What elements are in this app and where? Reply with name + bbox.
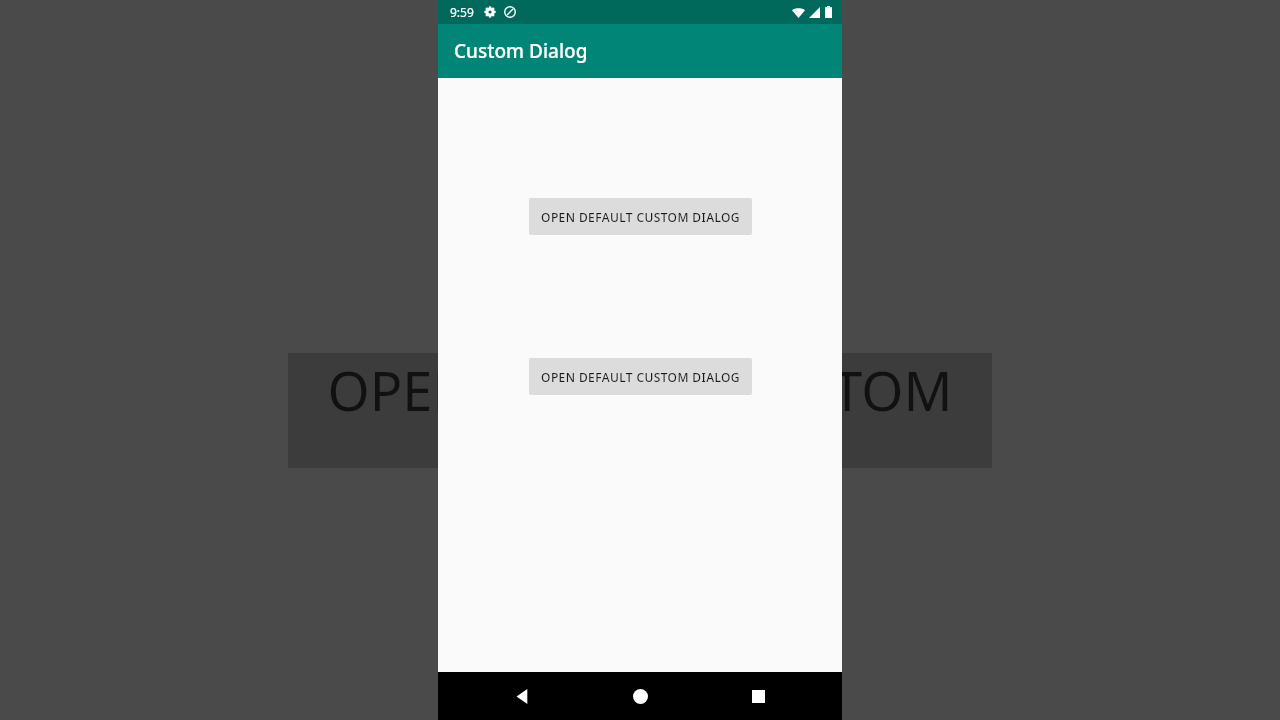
staticText: Custom Dialog (454, 38, 588, 64)
staticText: OPEN DEFAULT CUSTOM DIALOG (541, 369, 740, 385)
button[interactable]: Home (618, 674, 662, 718)
button[interactable]: OPEN DEFAULT CUSTOM DIALOG (529, 198, 752, 235)
staticText: OPEN DEFAULT CUSTOM DIALOG (288, 353, 992, 468)
staticText: OPEN DEFAULT CUSTOM DIALOG (541, 209, 740, 225)
button[interactable]: Recent apps (736, 674, 780, 718)
staticText: 9:59 (450, 4, 474, 20)
button[interactable]: Back (500, 674, 544, 718)
button[interactable]: OPEN DEFAULT CUSTOM DIALOG (529, 358, 752, 395)
